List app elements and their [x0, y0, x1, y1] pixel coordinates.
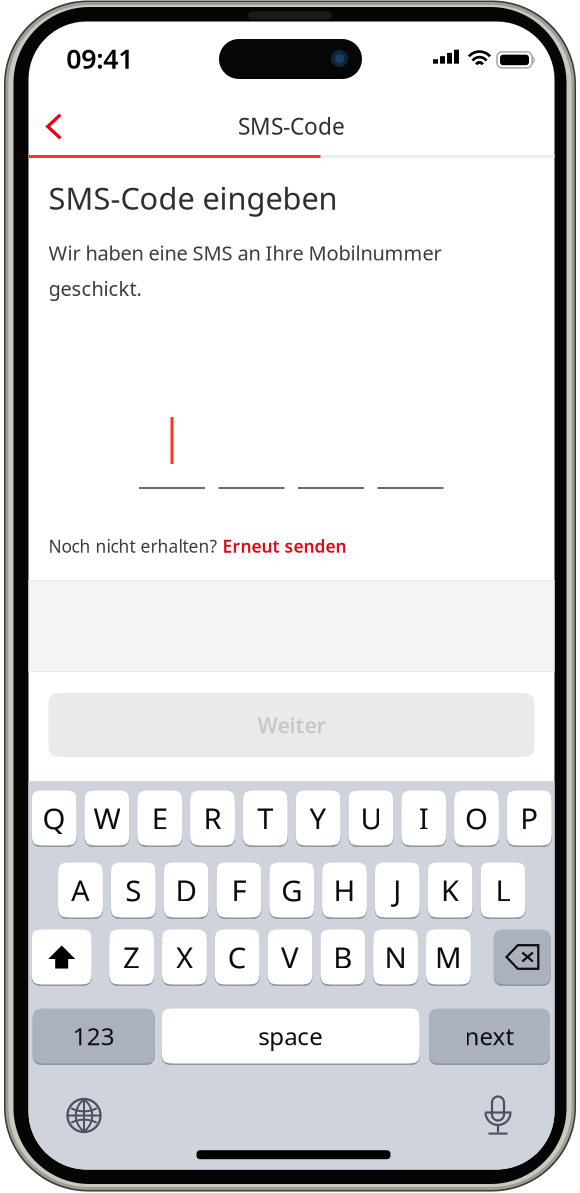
button[interactable]: A: [58, 862, 103, 919]
staticText: S: [125, 870, 141, 909]
staticText: SMS-Code eingeben: [48, 177, 337, 218]
button[interactable]: T: [243, 790, 288, 847]
staticText: next: [464, 1020, 514, 1052]
staticText: 09:41: [66, 41, 133, 76]
staticText: P: [520, 798, 538, 837]
button[interactable]: O: [454, 790, 499, 847]
button[interactable]: R: [190, 790, 235, 847]
button[interactable]: K: [428, 862, 472, 919]
staticText: V: [281, 937, 299, 976]
staticText: Noch nicht erhalten?: [48, 534, 222, 557]
button[interactable]: Next keyboard: [57, 1088, 111, 1142]
button[interactable]: F: [216, 862, 261, 919]
button[interactable]: L: [480, 862, 525, 919]
button[interactable]: Q: [32, 790, 76, 847]
button[interactable]: U: [348, 790, 393, 847]
staticText: C: [228, 937, 247, 976]
staticText: geschickt.: [48, 275, 141, 302]
button[interactable]: Weiter: [48, 693, 534, 757]
staticText: Z: [123, 937, 140, 976]
staticText: A: [71, 870, 90, 909]
staticText: Weiter: [257, 711, 325, 739]
button[interactable]: Z: [109, 929, 154, 986]
staticText: O: [465, 798, 488, 837]
staticText: G: [281, 870, 302, 909]
button[interactable]: H: [322, 862, 367, 919]
button[interactable]: Y: [296, 790, 340, 847]
staticText: E: [152, 798, 168, 837]
button[interactable]: Shift: [32, 929, 92, 986]
button[interactable]: S: [111, 862, 156, 919]
staticText: H: [333, 870, 355, 909]
staticText: Erneut senden: [222, 534, 346, 557]
staticText: N: [385, 937, 407, 976]
button[interactable]: Delete: [494, 929, 551, 986]
staticText: U: [360, 798, 381, 837]
button[interactable]: I: [401, 790, 446, 847]
staticText: X: [176, 937, 193, 976]
staticText: F: [231, 870, 246, 909]
button[interactable]: Back: [30, 101, 78, 151]
staticText: Y: [310, 798, 327, 837]
staticText: Wir haben eine SMS an Ihre Mobilnummer: [48, 239, 441, 266]
button[interactable]: space: [162, 1008, 420, 1065]
button[interactable]: N: [373, 929, 418, 986]
staticText: R: [203, 798, 221, 837]
button[interactable]: B: [320, 929, 365, 986]
button[interactable]: 123: [33, 1008, 155, 1065]
button[interactable]: J: [375, 862, 420, 919]
staticText: D: [176, 870, 197, 909]
button[interactable]: E: [137, 790, 182, 847]
staticText: M: [435, 937, 462, 976]
button[interactable]: V: [268, 929, 312, 986]
staticText: J: [393, 870, 401, 909]
button[interactable]: Dictation: [471, 1089, 525, 1143]
staticText: I: [419, 798, 429, 837]
button[interactable]: Erneut senden: [222, 534, 346, 557]
staticText: 123: [73, 1020, 115, 1052]
staticText: L: [495, 870, 510, 909]
staticText: space: [258, 1020, 323, 1052]
staticText: T: [257, 798, 273, 837]
button[interactable]: W: [84, 790, 129, 847]
staticText: K: [441, 870, 459, 909]
button[interactable]: G: [269, 862, 314, 919]
button[interactable]: X: [162, 929, 207, 986]
staticText: Q: [43, 798, 66, 837]
button[interactable]: D: [164, 862, 208, 919]
staticText: SMS-Code: [238, 111, 345, 141]
staticText: W: [93, 798, 120, 837]
button[interactable]: M: [426, 929, 471, 986]
staticText: B: [333, 937, 352, 976]
button[interactable]: C: [215, 929, 260, 986]
button[interactable]: P: [507, 790, 552, 847]
button[interactable]: next: [429, 1008, 550, 1065]
